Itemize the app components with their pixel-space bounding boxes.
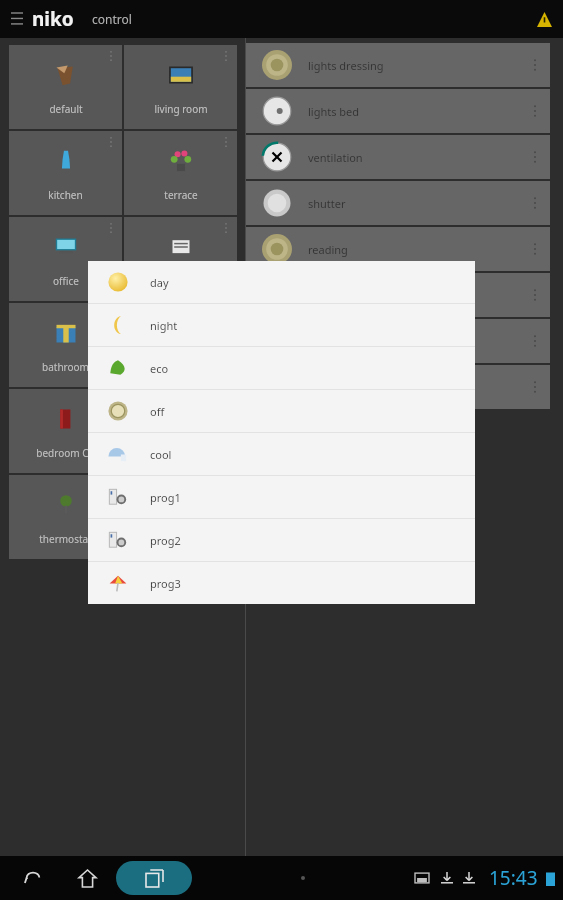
button[interactable]: thermostat bbox=[9, 475, 122, 559]
button[interactable]: off bbox=[88, 390, 475, 432]
button[interactable]: night bbox=[88, 304, 475, 346]
button[interactable]: day bbox=[88, 261, 475, 303]
button[interactable]: prog1 bbox=[88, 476, 475, 518]
staticText: prog3 bbox=[150, 576, 181, 591]
staticText: bedroom Ch bbox=[36, 446, 95, 460]
staticText: reading bbox=[308, 242, 348, 257]
button[interactable]: ambient bbox=[246, 273, 550, 317]
button[interactable]: More options bbox=[106, 49, 116, 63]
button[interactable]: eco bbox=[88, 347, 475, 389]
button[interactable]: kitchen bbox=[9, 131, 122, 215]
staticText: terrace bbox=[164, 188, 198, 202]
button[interactable]: default bbox=[9, 45, 122, 129]
button[interactable]: More options bbox=[106, 135, 116, 149]
button[interactable]: heating bbox=[246, 365, 550, 409]
button[interactable]: garden bbox=[124, 217, 237, 301]
button[interactable]: bedroom Ch bbox=[9, 389, 122, 473]
staticText: night bbox=[150, 318, 178, 333]
button[interactable]: Back bbox=[14, 859, 52, 897]
button[interactable]: bathroom bbox=[9, 303, 122, 387]
button[interactable]: bedroom bbox=[124, 303, 237, 387]
button[interactable]: terrace bbox=[124, 131, 237, 215]
staticText: control bbox=[92, 11, 132, 27]
staticText: cool bbox=[150, 447, 172, 462]
button[interactable]: prog2 bbox=[88, 519, 475, 561]
staticText: bathroom bbox=[42, 360, 89, 374]
staticText: ventilation bbox=[308, 150, 363, 165]
staticText: eco bbox=[150, 361, 169, 376]
staticText: niko bbox=[32, 6, 74, 32]
button[interactable]: prog3 bbox=[88, 562, 475, 604]
button[interactable]: More options bbox=[530, 103, 540, 119]
button[interactable]: Recent apps bbox=[116, 861, 192, 895]
button[interactable]: More options bbox=[106, 307, 116, 321]
button[interactable]: ventilation bbox=[246, 135, 550, 179]
button[interactable]: More options bbox=[530, 195, 540, 211]
staticText: off bbox=[150, 404, 165, 419]
button[interactable]: shutter bbox=[246, 181, 550, 225]
button[interactable]: lights dressing bbox=[246, 43, 550, 87]
button[interactable]: misc bbox=[124, 475, 237, 559]
button[interactable]: lights bed bbox=[246, 89, 550, 133]
button[interactable]: living room bbox=[124, 45, 237, 129]
button[interactable]: More options bbox=[221, 49, 231, 63]
button[interactable]: reading bbox=[246, 227, 550, 271]
button[interactable]: More options bbox=[530, 149, 540, 165]
button[interactable]: Warning bbox=[531, 6, 557, 32]
button[interactable]: Home bbox=[68, 859, 106, 897]
button[interactable]: cool bbox=[88, 433, 475, 475]
staticText: lights bed bbox=[308, 104, 360, 119]
staticText: office bbox=[53, 274, 79, 288]
staticText: garden bbox=[164, 274, 198, 288]
staticText: heating bbox=[308, 380, 348, 395]
button[interactable]: More options bbox=[221, 221, 231, 235]
staticText: living room bbox=[154, 102, 208, 116]
button[interactable]: office bbox=[9, 217, 122, 301]
staticText: misc bbox=[170, 532, 192, 546]
button[interactable]: hall bbox=[124, 389, 237, 473]
staticText: bedroom bbox=[159, 360, 203, 374]
button[interactable]: More options bbox=[530, 241, 540, 257]
staticText: shutter bbox=[308, 196, 346, 211]
staticText: prog2 bbox=[150, 533, 181, 548]
button[interactable]: More options bbox=[530, 333, 540, 349]
staticText: day bbox=[150, 275, 169, 290]
staticText: lights dressing bbox=[308, 58, 384, 73]
button[interactable]: More options bbox=[530, 57, 540, 73]
button[interactable]: More options bbox=[530, 379, 540, 395]
staticText: 15:43 bbox=[489, 865, 538, 891]
button[interactable]: More options bbox=[530, 287, 540, 303]
staticText: prog1 bbox=[150, 490, 181, 505]
button[interactable]: socket bbox=[246, 319, 550, 363]
staticText: kitchen bbox=[48, 188, 83, 202]
button[interactable]: Menu bbox=[6, 8, 28, 30]
button[interactable]: More options bbox=[221, 135, 231, 149]
button[interactable]: More options bbox=[106, 393, 116, 407]
staticText: thermostat bbox=[39, 532, 92, 546]
staticText: socket bbox=[308, 334, 342, 349]
button[interactable]: More options bbox=[106, 221, 116, 235]
staticText: default bbox=[49, 102, 83, 116]
button[interactable]: More options bbox=[106, 479, 116, 493]
